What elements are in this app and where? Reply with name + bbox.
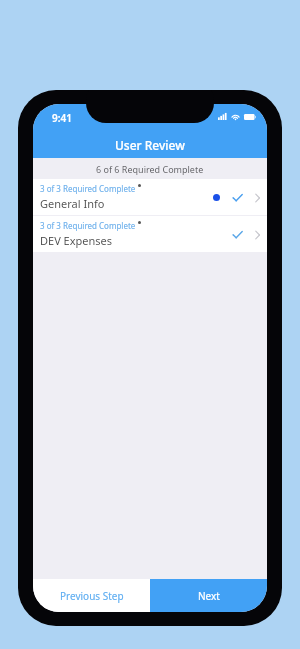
staticText: 3 of 3 Required Complete: [40, 183, 136, 194]
staticText: Next: [198, 589, 220, 603]
button[interactable]: Next: [150, 579, 267, 612]
staticText: 9:41: [52, 111, 72, 125]
button[interactable]: Previous Step: [33, 579, 150, 612]
staticText: 6 of 6 Required Complete: [96, 163, 204, 175]
button[interactable]: 3 of 3 Required Complete: [33, 179, 267, 215]
staticText: General Info: [40, 196, 105, 211]
staticText: Previous Step: [60, 589, 124, 603]
staticText: DEV Expenses: [40, 233, 113, 248]
staticText: 3 of 3 Required Complete: [40, 220, 136, 231]
staticText: User Review: [115, 137, 185, 153]
button[interactable]: 3 of 3 Required Complete: [33, 216, 267, 252]
